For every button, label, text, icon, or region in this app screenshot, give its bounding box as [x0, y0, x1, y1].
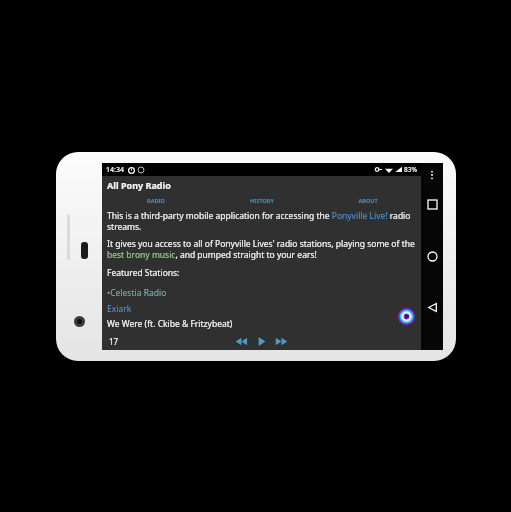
- button[interactable]: More options: [425, 168, 439, 182]
- button[interactable]: Fast forward: [275, 335, 288, 348]
- button[interactable]: Back: [424, 299, 440, 315]
- staticText: 14:34: [106, 165, 124, 175]
- button[interactable]: HISTORY: [209, 193, 315, 208]
- button[interactable]: ABOUT: [315, 193, 421, 208]
- button[interactable]: Home: [424, 248, 440, 264]
- staticText: RADIO: [147, 197, 165, 204]
- staticText: •Celestia Radio: [107, 287, 167, 299]
- button[interactable]: Recents: [424, 196, 440, 212]
- staticText: 83%: [404, 165, 417, 174]
- staticText: ABOUT: [358, 197, 378, 204]
- staticText: It gives you access to all of Ponyville …: [107, 238, 416, 260]
- staticText: We Were (ft. Ckibe & Fritzybeat): [107, 318, 233, 330]
- staticText: This is a third-party mobile application…: [107, 210, 416, 232]
- button[interactable]: Station logo: [398, 308, 415, 325]
- staticText: HISTORY: [250, 197, 274, 204]
- staticText: 17: [109, 336, 119, 347]
- staticText: Featured Stations:: [107, 267, 180, 279]
- staticText: All Pony Radio: [107, 179, 171, 191]
- button[interactable]: RADIO: [102, 193, 209, 208]
- button[interactable]: Rewind: [235, 335, 248, 348]
- staticText: Exiark: [107, 303, 132, 315]
- button[interactable]: Play: [255, 335, 268, 348]
